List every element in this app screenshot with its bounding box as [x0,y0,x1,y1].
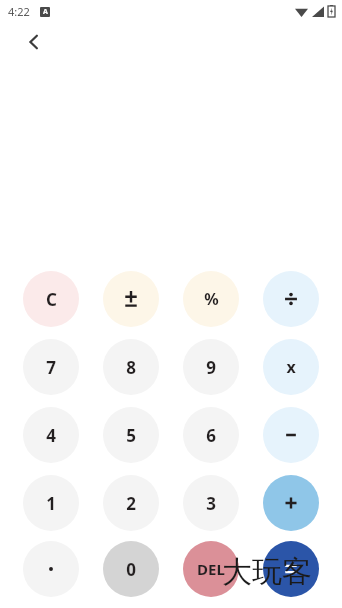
staticText: 4:22 [8,4,30,19]
staticText: C [46,288,57,311]
button[interactable]: Minus [263,407,319,463]
staticText: 0 [126,558,136,581]
button[interactable]: 9 [183,339,239,395]
button[interactable]: 8 [103,339,159,395]
button[interactable]: Plus minus [103,271,159,327]
staticText: DEL [197,559,225,579]
button[interactable]: 3 [183,475,239,531]
staticText: 5 [126,424,136,447]
staticText: 6 [206,424,216,447]
staticText: 4 [46,424,56,447]
button[interactable]: Decimal point [23,541,79,597]
button[interactable]: 4 [23,407,79,463]
button[interactable]: 1 [23,475,79,531]
button[interactable]: DEL [183,541,239,597]
staticText: A [43,7,48,17]
button[interactable]: 7 [23,339,79,395]
button[interactable]: 0 [103,541,159,597]
staticText: 7 [46,356,56,379]
button[interactable]: 5 [103,407,159,463]
button[interactable]: x [263,339,319,395]
staticText: 9 [206,356,216,379]
button[interactable]: 6 [183,407,239,463]
button[interactable]: % [183,271,239,327]
staticText: 2 [126,492,136,515]
button[interactable]: C [23,271,79,327]
staticText: 1 [46,492,56,515]
button[interactable]: Equals [263,541,319,597]
staticText: % [204,288,219,310]
button[interactable]: Back [14,22,54,62]
staticText: 8 [126,356,136,379]
button[interactable]: 2 [103,475,159,531]
staticText: x [286,356,296,378]
staticText: 大玩客 [222,553,312,591]
staticText: 3 [206,492,216,515]
button[interactable]: Divide [263,271,319,327]
button[interactable]: Plus [263,475,319,531]
